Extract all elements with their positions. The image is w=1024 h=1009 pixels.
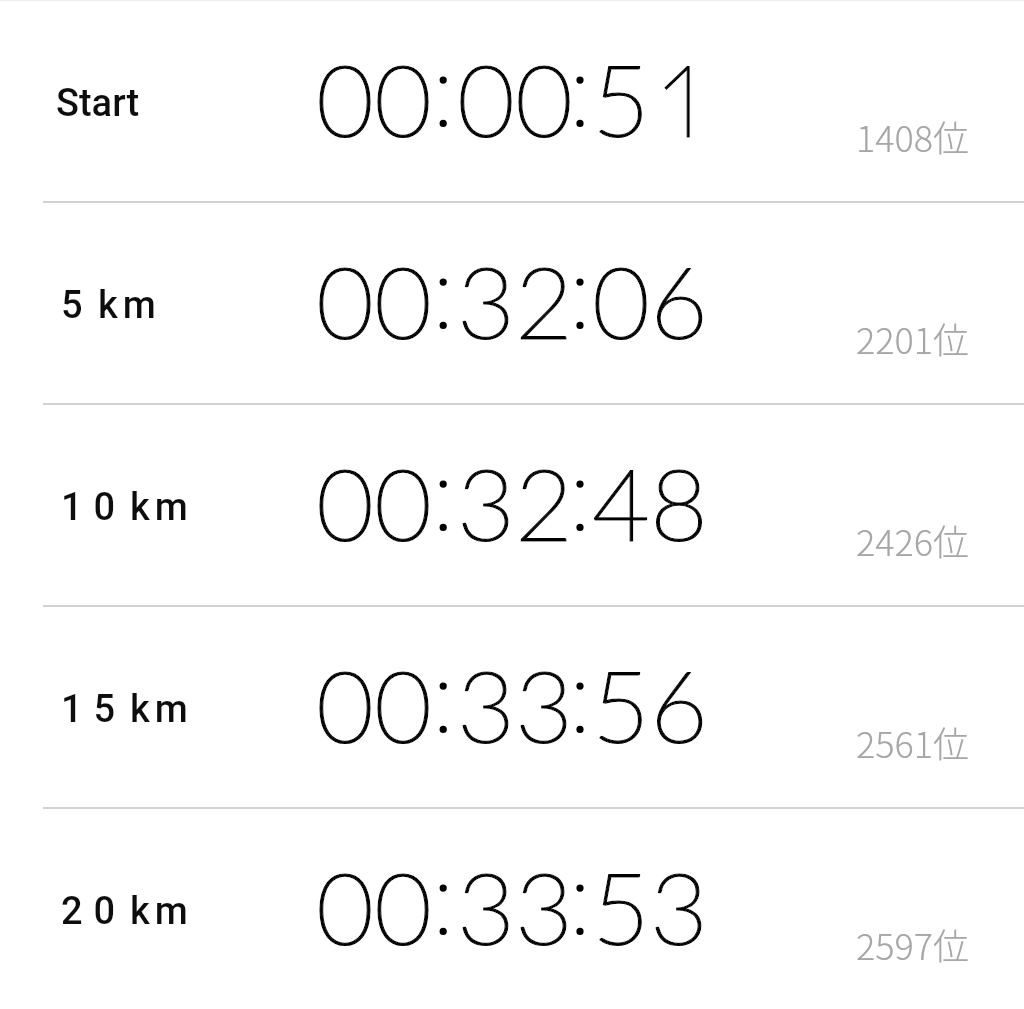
staticText: 2597位 [856, 918, 970, 970]
staticText: 3 [515, 644, 573, 764]
staticText: 3 [457, 442, 515, 562]
staticText: 6 [650, 240, 708, 360]
staticText: 0 [374, 846, 432, 966]
staticText: 3 [457, 240, 515, 360]
staticText: 0 [374, 442, 432, 562]
staticText: 0 [316, 38, 374, 158]
staticText: 4 [592, 442, 650, 562]
staticText: 2561位 [856, 716, 970, 768]
staticText: 0 [457, 38, 515, 158]
staticText: 2 [515, 442, 573, 562]
staticText: 5 [592, 846, 650, 966]
staticText: km [98, 283, 161, 328]
button[interactable]: 15 [0, 606, 1024, 808]
staticText: 3 [650, 846, 708, 966]
staticText: km [130, 687, 193, 732]
staticText: 3 [457, 644, 515, 764]
staticText: 0 [316, 846, 374, 966]
staticText: Start [56, 81, 140, 126]
staticText: 0 [374, 38, 432, 158]
staticText: 3 [457, 644, 515, 764]
staticText: 0 [374, 240, 432, 360]
staticText: 0 [316, 644, 374, 764]
button[interactable]: Start [0, 0, 1024, 202]
staticText: 0 [592, 240, 650, 360]
staticText: 3 [457, 846, 515, 966]
staticText: 20 [61, 889, 127, 934]
staticText: 2 [515, 240, 573, 360]
staticText: 0 [316, 442, 374, 562]
staticText: 1 [656, 34, 714, 168]
staticText: 0 [374, 644, 432, 764]
staticText: 8 [650, 442, 708, 562]
staticText: 0 [316, 240, 374, 360]
staticText: 3 [515, 846, 573, 966]
staticText: 0 [316, 644, 374, 764]
staticText: 3 [515, 846, 573, 966]
staticText: 1408位 [856, 110, 970, 162]
staticText: 8 [650, 442, 708, 562]
staticText: 0 [515, 38, 573, 158]
staticText: 10 [61, 485, 127, 530]
staticText: 5 [592, 38, 650, 158]
staticText: 1 [656, 34, 714, 168]
staticText: 3 [515, 644, 573, 764]
staticText: 0 [457, 38, 515, 158]
staticText: 15 [61, 687, 127, 732]
staticText: 2 [515, 240, 573, 360]
staticText: 3 [650, 846, 708, 966]
staticText: 5 [61, 283, 94, 328]
staticText: 0 [374, 240, 432, 360]
staticText: 6 [650, 240, 708, 360]
staticText: 0 [316, 846, 374, 966]
staticText: 3 [457, 442, 515, 562]
staticText: 5 [592, 644, 650, 764]
staticText: 0 [316, 240, 374, 360]
staticText: 0 [374, 846, 432, 966]
button[interactable]: 20 [0, 808, 1024, 1009]
staticText: 0 [515, 38, 573, 158]
staticText: 0 [374, 644, 432, 764]
staticText: 3 [457, 240, 515, 360]
staticText: 2 [515, 442, 573, 562]
staticText: 3 [457, 846, 515, 966]
staticText: 0 [374, 442, 432, 562]
staticText: 5 [592, 38, 650, 158]
staticText: 0 [374, 38, 432, 158]
staticText: km [130, 485, 193, 530]
staticText: 2201位 [856, 312, 970, 364]
staticText: 0 [316, 442, 374, 562]
staticText: 2426位 [856, 514, 970, 566]
staticText: km [130, 889, 193, 934]
staticText: 4 [592, 442, 650, 562]
staticText: 0 [592, 240, 650, 360]
button[interactable]: 5 [0, 202, 1024, 404]
staticText: 6 [650, 644, 708, 764]
staticText: 6 [650, 644, 708, 764]
staticText: 0 [316, 38, 374, 158]
button[interactable]: 10 [0, 404, 1024, 606]
staticText: 5 [592, 644, 650, 764]
staticText: 5 [592, 846, 650, 966]
